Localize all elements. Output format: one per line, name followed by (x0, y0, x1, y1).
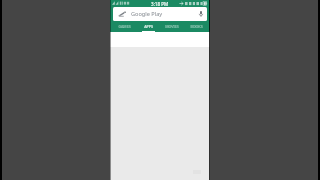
staticText: Google Play (131, 10, 163, 18)
other: Google Play (118, 11, 126, 17)
staticText: APPS (144, 24, 153, 29)
button[interactable]: APPS (136, 21, 160, 32)
button[interactable]: BOOKS (184, 21, 208, 32)
button[interactable]: MOVIES (160, 21, 184, 32)
staticText: 3:18 PM (151, 1, 169, 7)
staticText: BOOKS (190, 24, 203, 29)
button[interactable]: Google Play (113, 7, 207, 21)
staticText: GAMES (118, 24, 131, 29)
button[interactable]: GAMES (112, 21, 136, 32)
staticText: MOVIES (165, 24, 179, 29)
other: Voice search (199, 11, 203, 17)
